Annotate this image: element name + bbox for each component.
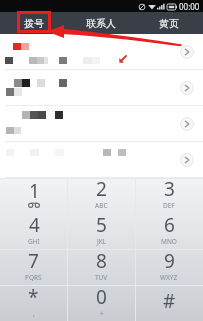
staticText: 2 bbox=[96, 176, 107, 202]
staticText: 5 bbox=[96, 212, 107, 238]
button[interactable]: 拨号 bbox=[0, 12, 67, 34]
staticText: , bbox=[33, 309, 35, 318]
staticText: 9 bbox=[164, 248, 175, 274]
staticText: 00:00 bbox=[179, 1, 200, 12]
button[interactable]: 黄页 bbox=[135, 12, 203, 34]
button[interactable] bbox=[0, 142, 203, 178]
button[interactable]: 1 bbox=[0, 178, 67, 213]
button[interactable]: Details bbox=[180, 153, 194, 167]
button[interactable]: Details bbox=[180, 45, 194, 59]
button[interactable]: 5 bbox=[67, 213, 135, 249]
button[interactable] bbox=[0, 70, 203, 106]
staticText: JKL bbox=[97, 237, 107, 246]
button[interactable]: 0 bbox=[67, 285, 135, 321]
button[interactable] bbox=[0, 34, 203, 70]
button[interactable]: # bbox=[135, 285, 203, 321]
staticText: 1 bbox=[29, 178, 40, 204]
button[interactable]: Details bbox=[180, 81, 194, 95]
staticText: # bbox=[163, 288, 176, 314]
staticText: 8 bbox=[96, 248, 107, 274]
staticText: 拨号 bbox=[24, 17, 44, 30]
staticText: DEF bbox=[163, 201, 175, 210]
button[interactable]: 2 bbox=[67, 178, 135, 213]
staticText: WXYZ bbox=[160, 273, 178, 282]
staticText: 4 bbox=[29, 212, 40, 238]
button[interactable] bbox=[0, 106, 203, 142]
staticText: 7 bbox=[28, 248, 39, 274]
staticText: 3 bbox=[164, 176, 175, 202]
button[interactable]: 7 bbox=[0, 249, 67, 285]
staticText: PQRS bbox=[25, 273, 42, 282]
button[interactable]: 联系人 bbox=[67, 12, 135, 34]
button[interactable]: 9 bbox=[135, 249, 203, 285]
button[interactable]: 8 bbox=[67, 249, 135, 285]
staticText: ABC bbox=[95, 201, 108, 210]
staticText: 6 bbox=[164, 212, 175, 238]
button[interactable]: 3 bbox=[135, 178, 203, 213]
button[interactable]: 4 bbox=[0, 213, 67, 249]
staticText: MNO bbox=[161, 237, 177, 246]
staticText: 0 bbox=[96, 284, 107, 310]
staticText: + bbox=[100, 309, 104, 318]
button[interactable]: Details bbox=[180, 117, 194, 131]
staticText: 联系人 bbox=[86, 17, 116, 30]
button[interactable]: 6 bbox=[135, 213, 203, 249]
staticText: GHI bbox=[28, 237, 40, 246]
staticText: 黄页 bbox=[159, 17, 179, 30]
button[interactable]: * bbox=[0, 285, 67, 321]
staticText: TUV bbox=[95, 273, 108, 282]
staticText: * bbox=[28, 284, 39, 310]
